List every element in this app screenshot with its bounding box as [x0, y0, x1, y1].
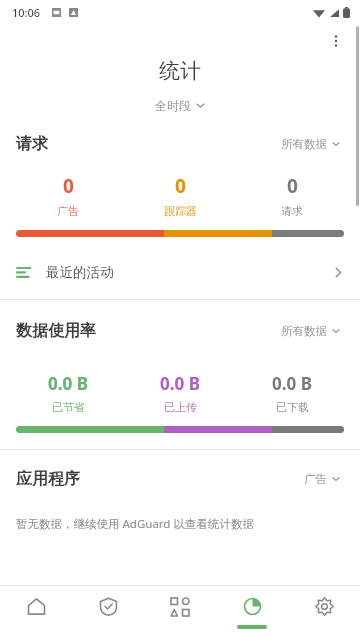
button[interactable]: 所有数据 — [277, 134, 344, 154]
staticText: 全时段 — [155, 98, 191, 113]
staticText: 广告 — [57, 204, 79, 218]
staticText: 最近的活动 — [46, 264, 114, 281]
staticText: 0.0 B — [160, 372, 200, 395]
button[interactable]: More options — [320, 25, 352, 57]
button[interactable]: 广告 — [300, 469, 344, 489]
staticText: 请求 — [16, 134, 48, 154]
staticText: 已上传 — [164, 400, 197, 414]
staticText: 统计 — [159, 58, 201, 84]
staticText: 0.0 B — [48, 372, 88, 395]
button[interactable]: Home — [0, 586, 72, 640]
staticText: 广告 — [304, 472, 327, 486]
button[interactable]: Statistics — [216, 586, 288, 640]
button[interactable]: 全时段 — [149, 96, 211, 115]
staticText: 应用程序 — [16, 469, 80, 489]
staticText: 0 — [175, 173, 186, 199]
staticText: 0 — [63, 173, 74, 199]
staticText: 0 — [287, 173, 298, 199]
staticText: 0.0 B — [272, 372, 312, 395]
staticText: 跟踪器 — [164, 204, 197, 218]
staticText: 请求 — [281, 204, 303, 218]
staticText: 暂无数据，继续使用 AdGuard 以查看统计数据 — [16, 516, 254, 532]
button[interactable]: Apps — [144, 586, 216, 640]
staticText: 所有数据 — [281, 324, 327, 338]
staticText: 所有数据 — [281, 137, 327, 151]
staticText: 已下载 — [276, 400, 309, 414]
button[interactable]: 最近的活动 — [0, 255, 360, 289]
button[interactable]: 所有数据 — [277, 321, 344, 341]
button[interactable]: Settings — [288, 586, 360, 640]
staticText: 已节省 — [52, 400, 85, 414]
staticText: 数据使用率 — [16, 321, 96, 341]
staticText: 10:06 — [12, 5, 41, 20]
button[interactable]: Protection — [72, 586, 144, 640]
